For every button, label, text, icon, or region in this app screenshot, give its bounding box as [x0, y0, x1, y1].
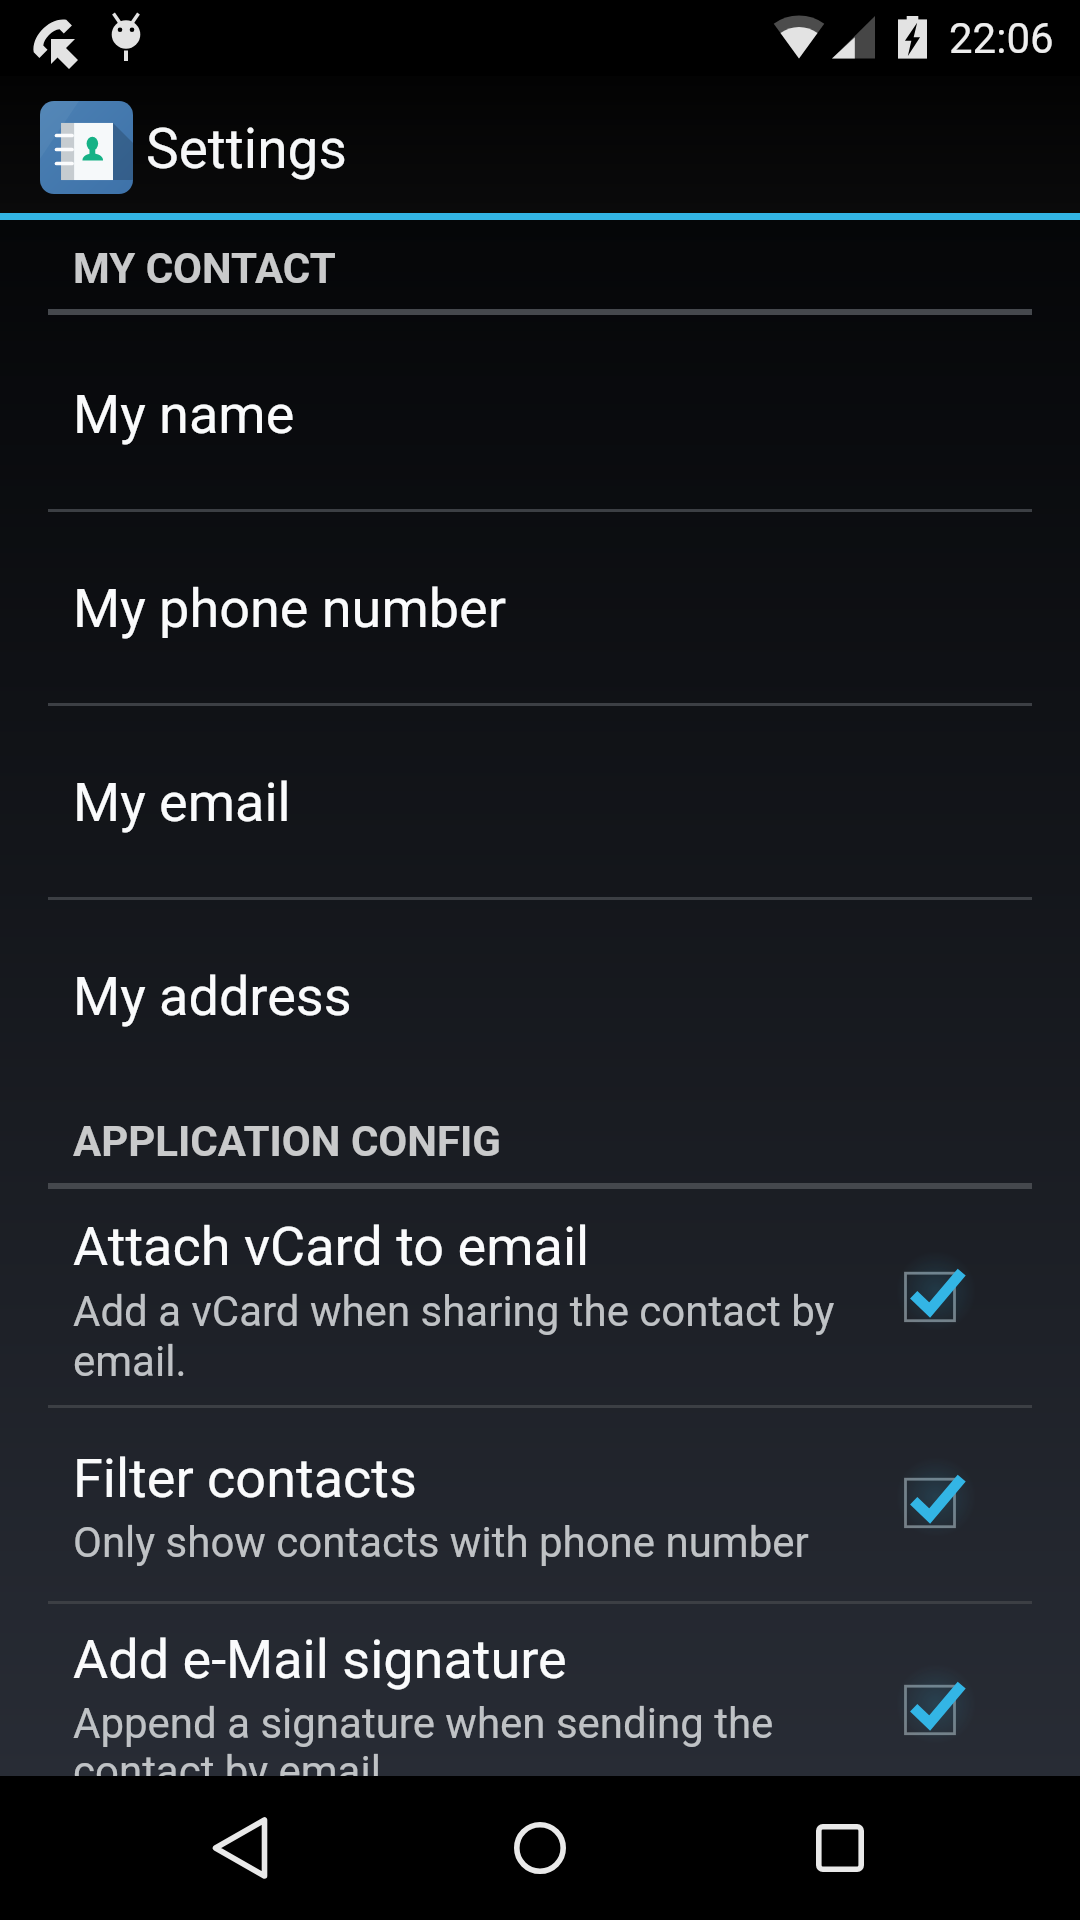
staticText: My name	[73, 383, 295, 446]
staticText: My phone number	[73, 577, 507, 640]
staticText: Only show contacts with phone number	[73, 1518, 809, 1567]
staticText: Add a vCard when sharing the contact by	[73, 1287, 835, 1336]
staticText: Add e-Mail signature	[73, 1628, 567, 1691]
button[interactable]: Toggle Attach vCard to email	[882, 1249, 978, 1345]
staticText: My email	[73, 771, 291, 834]
staticText: Append a signature when sending the	[73, 1699, 774, 1748]
button[interactable]: My address	[0, 899, 1080, 1093]
staticText: contact by email.	[73, 1747, 392, 1796]
button[interactable]: Toggle Add e-Mail signature	[882, 1662, 978, 1758]
button[interactable]: Back	[160, 1776, 320, 1920]
button[interactable]: Toggle Filter contacts	[882, 1455, 978, 1551]
button[interactable]: Attach vCard to email	[0, 1189, 1080, 1405]
button[interactable]: Recent apps	[760, 1776, 920, 1920]
staticText: My address	[73, 965, 352, 1028]
button[interactable]: My phone number	[0, 511, 1080, 703]
button[interactable]: Add e-Mail signature	[0, 1604, 1080, 1776]
button[interactable]: My name	[0, 315, 1080, 509]
staticText: Filter contacts	[73, 1447, 417, 1510]
staticText: Attach vCard to email	[73, 1215, 590, 1278]
staticText: 22:06	[949, 14, 1054, 63]
staticText: Settings	[146, 117, 347, 181]
button[interactable]: My email	[0, 705, 1080, 897]
button[interactable]: Home	[460, 1776, 620, 1920]
staticText: MY CONTACT	[73, 244, 336, 293]
button[interactable]: Settings	[0, 76, 1080, 213]
staticText: email.	[73, 1337, 187, 1386]
button[interactable]: Filter contacts	[0, 1408, 1080, 1601]
staticText: APPLICATION CONFIG	[73, 1117, 501, 1166]
